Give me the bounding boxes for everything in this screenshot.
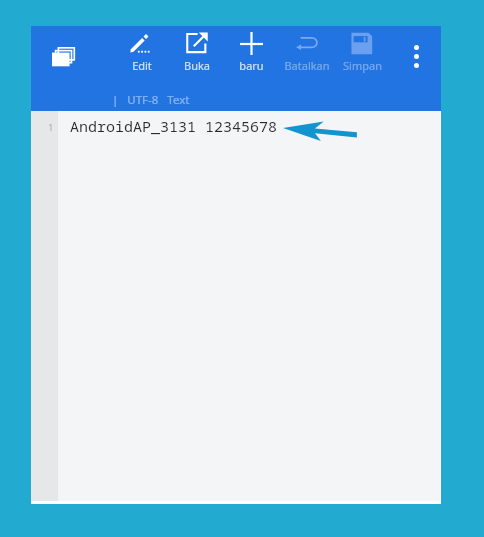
staticText: baru <box>239 58 264 73</box>
staticText: | UTF-8 Text <box>112 92 190 108</box>
button[interactable]: Simpan <box>335 28 390 76</box>
staticText: Edit <box>132 58 152 73</box>
staticText: Simpan <box>343 58 382 73</box>
button[interactable]: More options <box>398 38 434 74</box>
button[interactable]: Edit <box>114 28 169 76</box>
button[interactable]: Batalkan <box>279 28 334 76</box>
staticText: Batalkan <box>284 58 330 73</box>
button[interactable]: Tabs <box>42 35 84 77</box>
staticText: Buka <box>184 58 210 73</box>
button[interactable]: baru <box>224 28 279 76</box>
button[interactable]: Buka <box>169 28 224 76</box>
staticText: 1 <box>48 121 54 134</box>
staticText: AndroidAP_3131 12345678 <box>70 116 278 136</box>
